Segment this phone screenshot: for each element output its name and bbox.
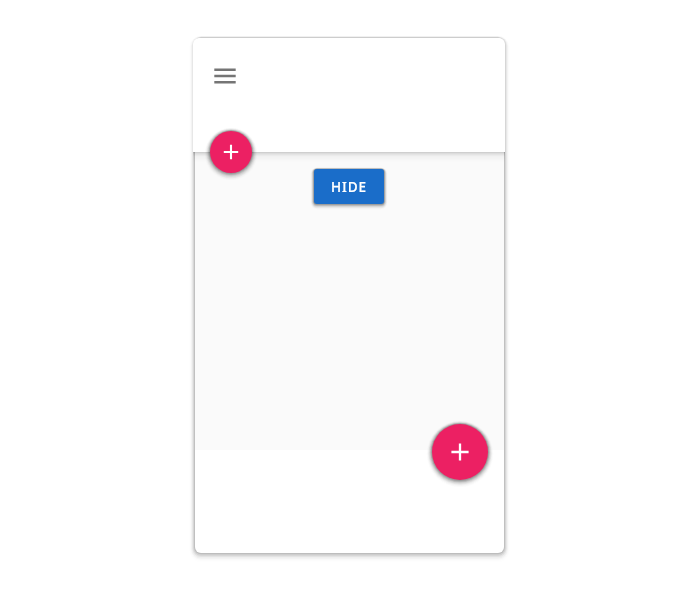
button[interactable]: Add xyxy=(210,131,252,173)
staticText: HIDE xyxy=(331,178,367,196)
button[interactable]: HIDE xyxy=(314,169,384,204)
button[interactable]: Add item xyxy=(432,424,488,480)
button[interactable]: Open navigation menu xyxy=(204,55,246,97)
